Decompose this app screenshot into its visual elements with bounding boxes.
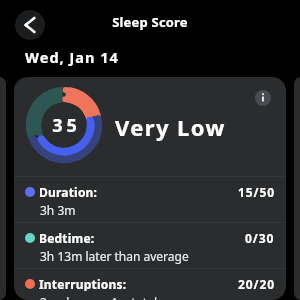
staticText: Bedtime: <box>39 230 95 245</box>
staticText: 0/30 <box>245 230 275 245</box>
button[interactable]: Duration: <box>14 176 286 222</box>
staticText: 35 <box>52 113 81 138</box>
button[interactable]: Back <box>15 10 45 40</box>
staticText: 2 wake-ups, 4m total <box>40 294 158 300</box>
staticText: 3h 13m later than average <box>40 248 189 264</box>
staticText: Interruptions: <box>39 276 127 291</box>
staticText: 20/20 <box>238 276 275 291</box>
button[interactable]: Bedtime: <box>14 222 286 268</box>
staticText: Sleep Score <box>0 13 300 31</box>
button[interactable]: Info <box>255 90 271 106</box>
staticText: Very Low <box>115 112 226 142</box>
staticText: 3h 3m <box>40 202 76 218</box>
button[interactable]: Interruptions: <box>14 268 286 300</box>
staticText: Duration: <box>39 184 98 199</box>
staticText: 15/50 <box>238 184 275 199</box>
staticText: Wed, Jan 14 <box>25 47 119 67</box>
